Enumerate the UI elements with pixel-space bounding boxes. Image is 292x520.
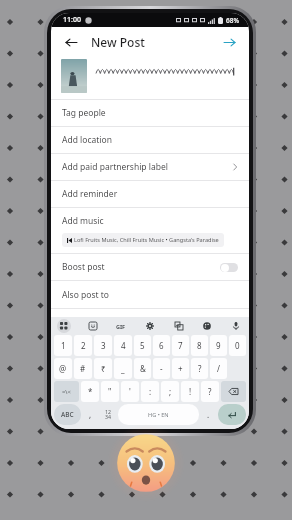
- staticText: 8: [197, 340, 202, 351]
- button[interactable]: ;: [161, 381, 179, 402]
- button[interactable]: 9: [210, 335, 227, 356]
- button[interactable]: 4: [114, 335, 132, 356]
- button[interactable]: *: [81, 381, 99, 402]
- staticText: ?: [208, 386, 212, 397]
- staticText: 3: [101, 340, 106, 351]
- button[interactable]: @: [54, 358, 72, 379]
- button[interactable]: ₹: [94, 358, 112, 379]
- staticText: *: [88, 386, 93, 397]
- staticText: Add music: [62, 215, 104, 227]
- staticText: ABC: [61, 410, 74, 419]
- button[interactable]: 1: [54, 335, 72, 356]
- button[interactable]: /: [210, 358, 227, 379]
- staticText: Add location: [62, 134, 112, 146]
- button[interactable]: &: [134, 358, 151, 379]
- button[interactable]: !: [181, 381, 199, 402]
- button[interactable]: Boost post: [51, 254, 249, 280]
- staticText: Add reminder: [62, 188, 118, 200]
- button[interactable]: Stickers: [86, 319, 100, 333]
- staticText: !: [189, 386, 192, 397]
- button[interactable]: Also post to: [51, 281, 249, 308]
- button[interactable]: _: [114, 358, 132, 379]
- staticText: 11:00: [63, 15, 81, 25]
- staticText: .: [207, 409, 210, 420]
- staticText: 1: [61, 340, 66, 351]
- button[interactable]: +: [172, 358, 189, 379]
- button[interactable]: ABC: [54, 404, 81, 425]
- staticText: _: [121, 363, 125, 374]
- staticText: +: [178, 363, 183, 374]
- button[interactable]: Themes: [200, 319, 214, 333]
- button[interactable]: Numbers: [99, 403, 117, 426]
- button[interactable]: Add music: [51, 208, 249, 253]
- staticText: Boost post: [62, 261, 105, 273]
- button[interactable]: Enter: [218, 404, 246, 425]
- staticText: HG • EN: [148, 411, 169, 419]
- staticText: 6: [159, 340, 164, 351]
- staticText: GIF: [116, 323, 126, 330]
- button[interactable]: Add reminder: [51, 181, 249, 207]
- staticText: #: [80, 363, 86, 374]
- staticText: 12 34: [105, 408, 111, 421]
- button[interactable]: ?: [191, 358, 208, 379]
- button[interactable]: ,: [83, 404, 98, 425]
- button[interactable]: 8: [191, 335, 208, 356]
- staticText: ₹: [101, 363, 106, 374]
- staticText: New Post: [91, 34, 145, 50]
- staticText: 2: [81, 340, 86, 351]
- staticText: -: [160, 363, 163, 374]
- button[interactable]: Backspace: [221, 381, 246, 402]
- staticText: /: [217, 363, 220, 374]
- button[interactable]: ?: [201, 381, 219, 402]
- button[interactable]: Settings: [143, 319, 157, 333]
- button[interactable]: 0: [229, 335, 246, 356]
- button[interactable]: 2: [74, 335, 92, 356]
- button[interactable]: Add paid partnership label: [51, 154, 249, 180]
- staticText: 7: [178, 340, 183, 351]
- button[interactable]: Selected photo: [61, 59, 87, 93]
- button[interactable]: -: [153, 358, 170, 379]
- button[interactable]: Tag people: [51, 100, 249, 126]
- button[interactable]: #: [74, 358, 92, 379]
- button[interactable]: .: [201, 404, 216, 425]
- button[interactable]: Share post: [219, 32, 239, 52]
- staticText: Tag people: [62, 107, 106, 119]
- button[interactable]: :: [141, 381, 159, 402]
- button[interactable]: Translate: [172, 319, 186, 333]
- staticText: 9: [216, 340, 221, 351]
- button[interactable]: ': [121, 381, 139, 402]
- staticText: ?: [198, 363, 202, 374]
- staticText: Lofi Fruits Music, Chill Fruits Music • …: [74, 236, 219, 244]
- staticText: :: [149, 386, 152, 397]
- button[interactable]: Symbols: [54, 381, 79, 402]
- staticText: &: [140, 363, 146, 374]
- staticText: ": [108, 386, 112, 397]
- staticText: 5: [140, 340, 145, 351]
- staticText: 68%: [226, 16, 239, 25]
- button[interactable]: GIF: [114, 319, 128, 333]
- staticText: 0: [235, 340, 240, 351]
- staticText: =\<: [62, 388, 71, 396]
- button[interactable]: 7: [172, 335, 189, 356]
- staticText: ': [129, 386, 131, 397]
- button[interactable]: 3: [94, 335, 112, 356]
- button[interactable]: Add location: [51, 127, 249, 153]
- button[interactable]: HG • EN: [118, 404, 199, 425]
- button[interactable]: Back: [61, 32, 81, 52]
- staticText: 4: [121, 340, 126, 351]
- staticText: ;: [169, 386, 172, 397]
- button[interactable]: ": [101, 381, 119, 402]
- button[interactable]: Voice input: [229, 319, 243, 333]
- staticText: ,: [89, 409, 92, 420]
- staticText: Add paid partnership label: [62, 161, 168, 173]
- button[interactable]: Keyboard layouts: [57, 319, 71, 333]
- button[interactable]: 5: [134, 335, 151, 356]
- button[interactable]: 6: [153, 335, 170, 356]
- staticText: @: [59, 363, 67, 374]
- staticText: Also post to: [62, 289, 109, 301]
